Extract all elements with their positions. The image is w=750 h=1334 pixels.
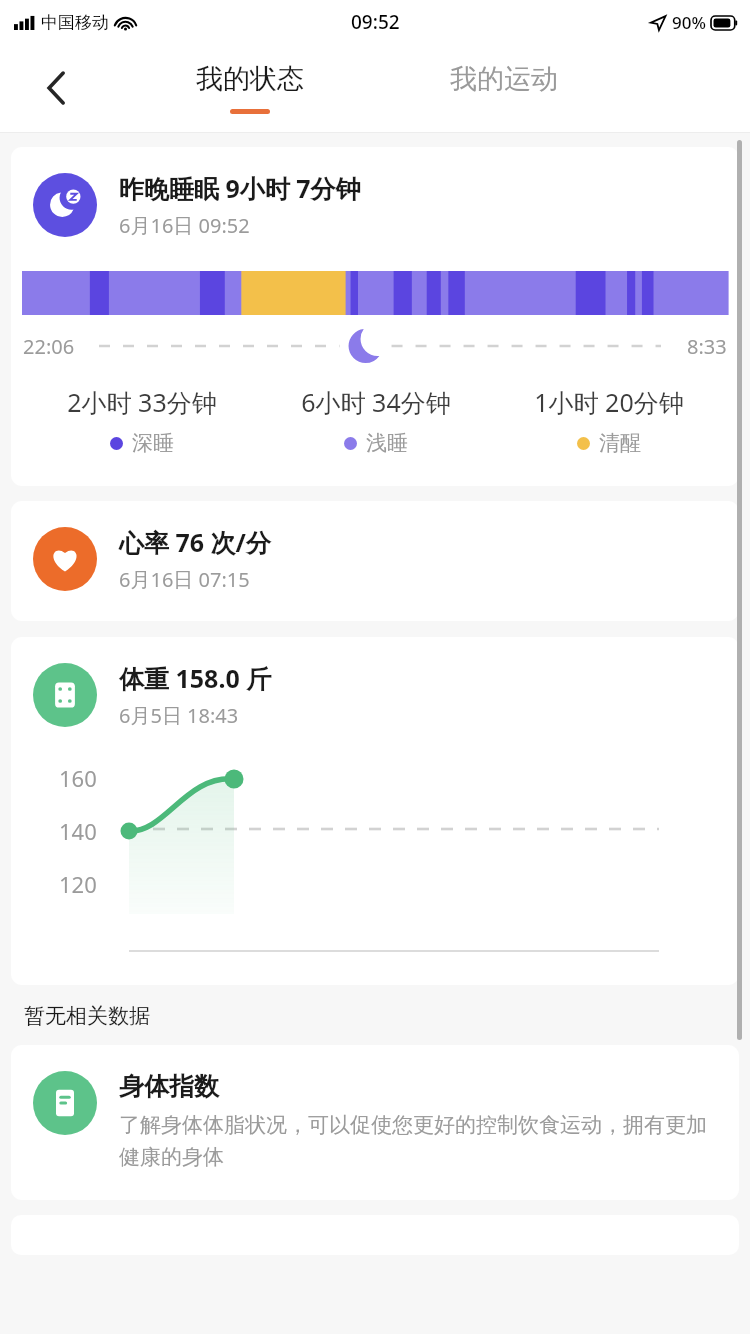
staticText: 我的运动 <box>450 62 558 96</box>
staticText: 清醒 <box>599 430 641 456</box>
staticText: 6月16日 07:15 <box>119 566 250 593</box>
staticText: 昨晚睡眠 9小时 7分钟 <box>119 171 361 205</box>
staticText: 我的状态 <box>196 62 304 96</box>
button[interactable]: 我的状态 <box>158 44 342 132</box>
staticText: 心率 76 次/分 <box>119 525 271 559</box>
staticText: 22:06 <box>23 333 75 360</box>
button[interactable]: 心率 76 次/分 <box>11 501 739 621</box>
staticText: 深睡 <box>132 430 174 456</box>
staticText: 120 <box>59 869 97 899</box>
button[interactable]: Back <box>34 65 80 111</box>
staticText: 身体指数 <box>119 1071 219 1102</box>
staticText: 90% <box>672 11 706 34</box>
staticText: 6小时 34分钟 <box>301 385 451 419</box>
button[interactable]: 身体指数 <box>11 1045 739 1200</box>
staticText: 8:33 <box>687 333 727 360</box>
button[interactable]: 昨晚睡眠 9小时 7分钟 <box>11 147 739 486</box>
staticText: 1小时 20分钟 <box>534 385 684 419</box>
staticText: 了解身体体脂状况，可以促使您更好的控制饮食运动，拥有更加健康的身体 <box>119 1112 713 1170</box>
staticText: 6月5日 18:43 <box>119 702 239 729</box>
staticText: 浅睡 <box>366 430 408 456</box>
staticText: 6月16日 09:52 <box>119 212 250 239</box>
staticText: 中国移动 <box>41 12 109 33</box>
button[interactable]: 我的运动 <box>412 44 596 132</box>
staticText: 160 <box>59 763 97 793</box>
staticText: 体重 158.0 斤 <box>119 661 272 695</box>
staticText: 暂无相关数据 <box>24 1003 150 1029</box>
staticText: 140 <box>59 816 97 846</box>
staticText: 2小时 33分钟 <box>67 385 217 419</box>
staticText: 09:52 <box>351 9 400 35</box>
button[interactable]: 体重 158.0 斤 <box>11 637 739 985</box>
